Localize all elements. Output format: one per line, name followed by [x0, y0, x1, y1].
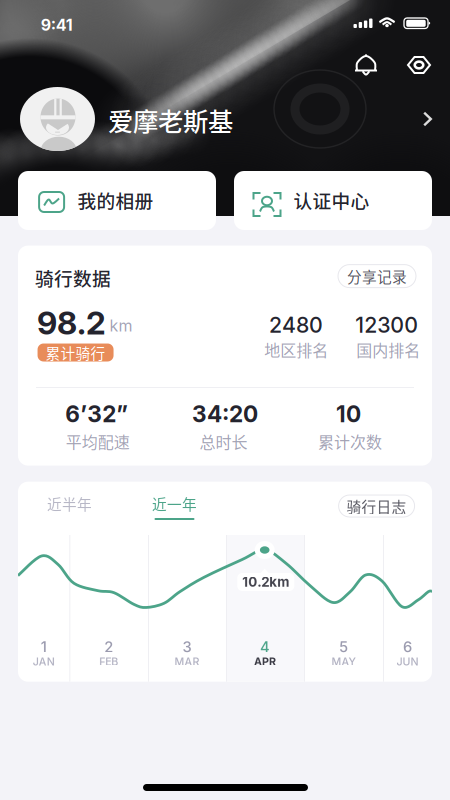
button[interactable]: 我的相册: [18, 171, 216, 230]
staticText: MAY: [331, 655, 355, 668]
staticText: 近一年: [152, 493, 197, 514]
staticText: 骑行数据: [35, 264, 111, 291]
staticText: 认证中心: [293, 186, 369, 213]
staticText: 我的相册: [77, 186, 153, 213]
button[interactable]: 分享记录: [338, 265, 416, 288]
button[interactable]: 近半年: [33, 485, 105, 523]
staticText: 6: [403, 638, 412, 656]
button[interactable]: 骑行日志: [339, 495, 415, 517]
button[interactable]: Notifications: [349, 47, 383, 81]
staticText: 34:20: [192, 400, 258, 428]
staticText: 平均配速: [66, 430, 130, 453]
staticText: 5: [339, 638, 348, 656]
staticText: 3: [182, 638, 191, 656]
staticText: 4: [260, 638, 270, 656]
staticText: JUN: [396, 655, 418, 668]
staticText: 累计骑行: [45, 342, 105, 363]
button[interactable]: 近一年: [138, 485, 210, 523]
staticText: MAR: [174, 655, 199, 668]
staticText: km: [109, 316, 132, 335]
staticText: 6’32”: [65, 400, 128, 428]
staticText: 10: [336, 400, 361, 428]
staticText: 骑行日志: [347, 495, 407, 517]
button[interactable]: 爱摩老斯基: [0, 82, 450, 156]
staticText: 总时长: [200, 430, 248, 453]
staticText: 1: [41, 638, 47, 656]
staticText: 2: [104, 638, 113, 656]
staticText: 98.2: [37, 303, 106, 342]
button[interactable]: 认证中心: [234, 171, 432, 230]
staticText: JAN: [33, 655, 55, 668]
staticText: 地区排名: [264, 338, 328, 361]
staticText: 9:41: [41, 15, 73, 35]
staticText: 累计次数: [318, 430, 382, 453]
staticText: 近半年: [47, 493, 92, 514]
staticText: FEB: [99, 655, 118, 668]
staticText: 12300: [355, 312, 418, 338]
staticText: 分享记录: [347, 265, 407, 287]
staticText: 10.2km: [242, 574, 289, 590]
button[interactable]: Settings: [402, 48, 436, 82]
staticText: 爱摩老斯基: [108, 102, 233, 138]
staticText: 2480: [269, 312, 323, 338]
staticText: APR: [254, 655, 276, 668]
staticText: 国内排名: [356, 338, 420, 361]
